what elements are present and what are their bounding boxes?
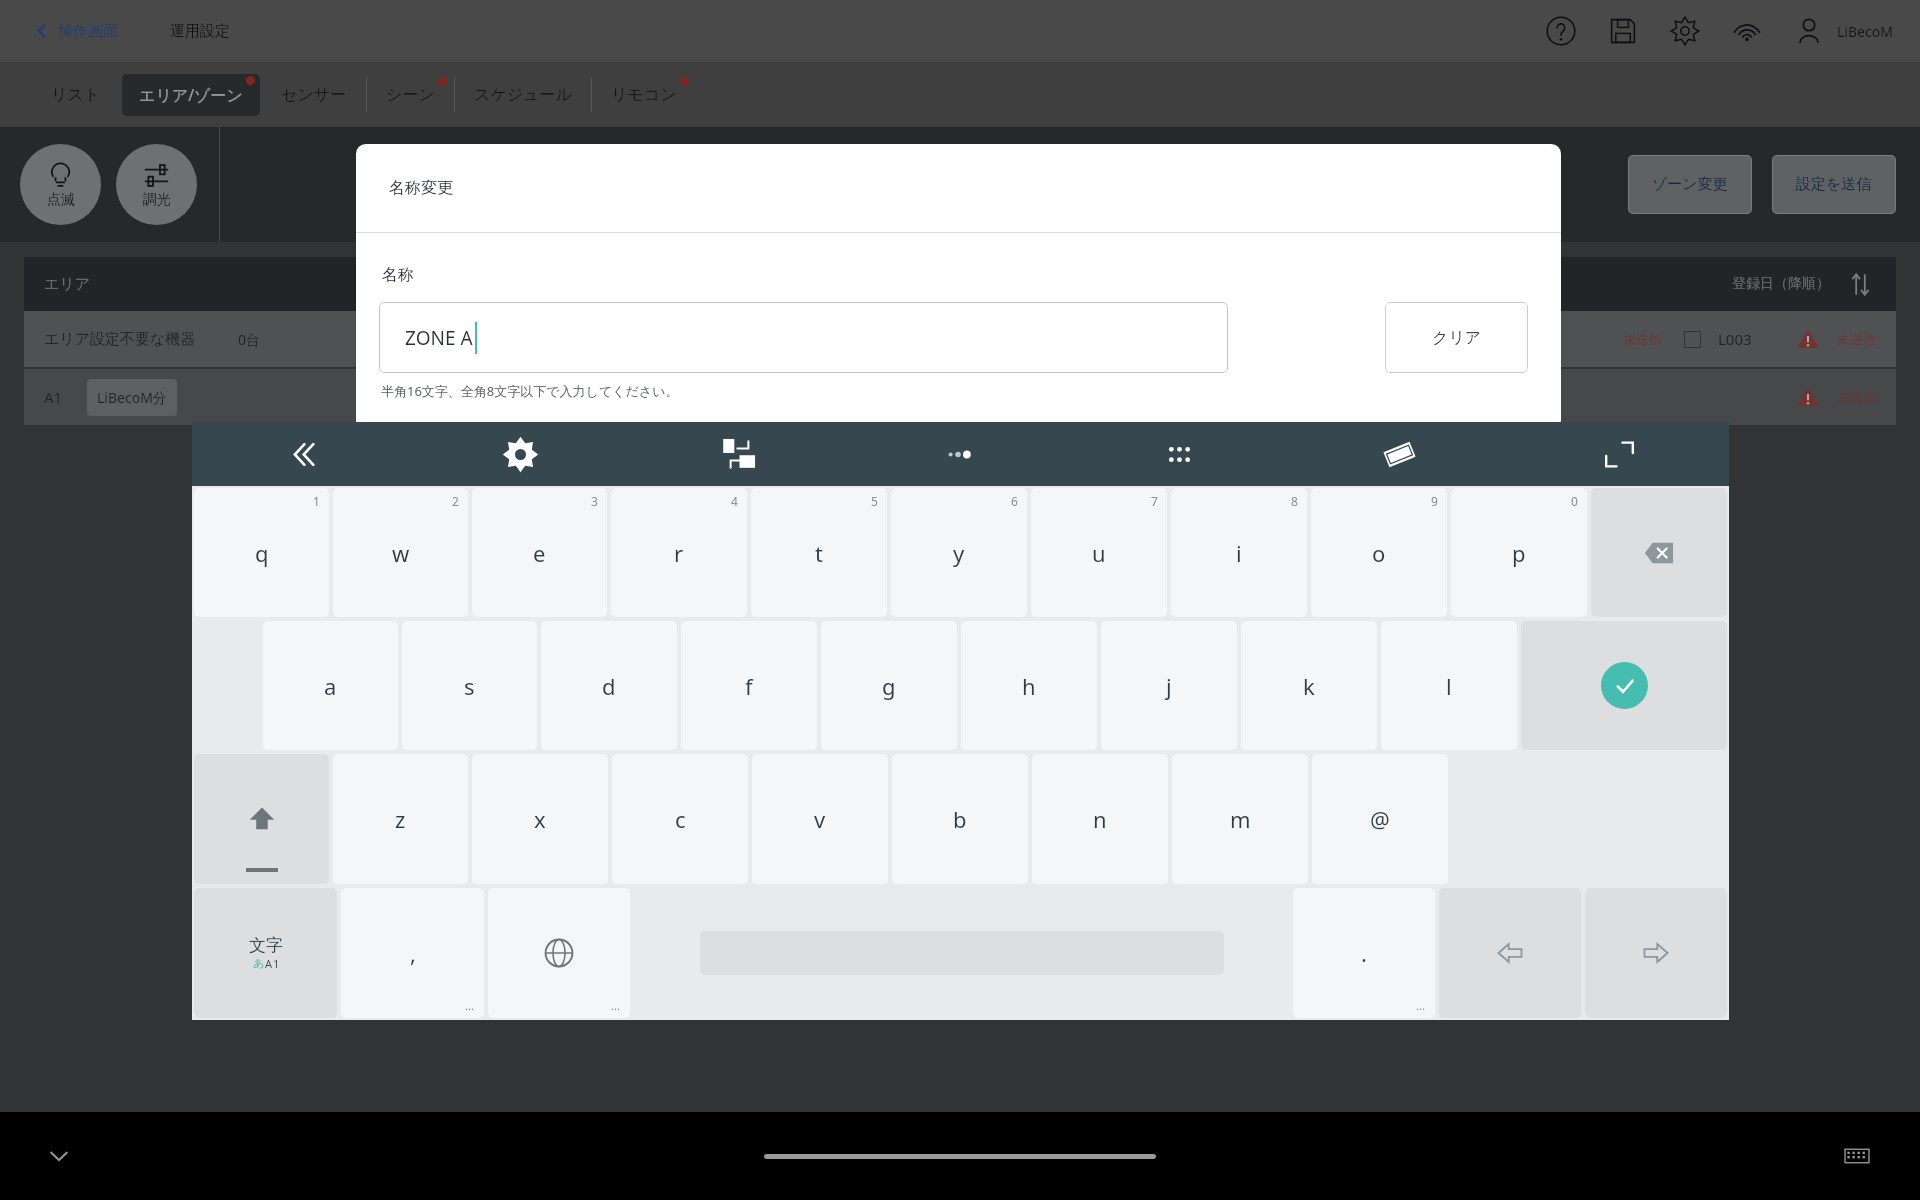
button[interactable]: Layout — [1289, 422, 1509, 486]
button[interactable]: Apps — [1069, 422, 1289, 486]
button[interactable]: , — [341, 888, 484, 1018]
button[interactable]: Settings — [1664, 10, 1706, 52]
button[interactable]: Right — [1585, 888, 1727, 1018]
button[interactable]: c — [612, 754, 748, 884]
button[interactable]: クリア — [1385, 302, 1528, 373]
staticText: c — [675, 804, 686, 834]
button[interactable]: Help — [1540, 10, 1582, 52]
button[interactable]: Save — [1602, 10, 1644, 52]
staticText: e — [533, 538, 546, 568]
staticText: 7 — [1151, 493, 1158, 509]
button[interactable]: ゾーン変更 — [1628, 155, 1752, 214]
button[interactable]: . — [1293, 888, 1435, 1018]
staticText: シーン — [386, 85, 435, 105]
staticText: t — [815, 538, 823, 568]
staticText: u — [1092, 538, 1106, 568]
button[interactable]: スケジュール — [457, 75, 589, 115]
button[interactable]: j — [1101, 621, 1237, 750]
staticText: ゾーン変更 — [1652, 175, 1728, 194]
button[interactable]: 2 — [333, 488, 468, 617]
button[interactable]: 4 — [611, 488, 747, 617]
staticText: w — [392, 538, 410, 568]
button[interactable]: Space — [634, 888, 1289, 1018]
staticText: p — [1512, 538, 1526, 568]
button[interactable]: a — [263, 621, 398, 750]
button[interactable]: Page — [849, 422, 1069, 486]
staticText: 5 — [871, 493, 878, 509]
staticText: h — [1022, 671, 1036, 701]
button[interactable]: ZONE A — [379, 302, 1228, 373]
button[interactable]: h — [961, 621, 1097, 750]
button[interactable]: 0 — [1451, 488, 1587, 617]
button[interactable]: 6 — [891, 488, 1027, 617]
button[interactable]: Shift — [194, 754, 329, 884]
button[interactable]: 8 — [1171, 488, 1307, 617]
button[interactable]: 7 — [1031, 488, 1167, 617]
button[interactable]: Switch input — [630, 422, 849, 486]
staticText: m — [1230, 804, 1251, 834]
button[interactable]: l — [1381, 621, 1517, 750]
staticText: f — [745, 671, 753, 701]
staticText: リモコン — [611, 85, 677, 105]
button[interactable]: センサー — [264, 75, 364, 115]
button[interactable]: Enter — [1521, 621, 1727, 750]
button[interactable]: 調光 — [116, 144, 197, 225]
button[interactable]: Collapse — [192, 422, 411, 486]
button[interactable]: 操作画面 — [27, 14, 123, 48]
button[interactable]: Backspace — [1591, 488, 1727, 617]
button[interactable]: m — [1172, 754, 1308, 884]
staticText: エリア — [44, 275, 91, 294]
button[interactable]: エリア/ゾーン — [122, 74, 260, 116]
staticText: 名称変更 — [389, 178, 453, 198]
button[interactable]: z — [333, 754, 468, 884]
staticText: 調光 — [143, 191, 171, 209]
staticText: 設定を送信 — [1796, 175, 1872, 194]
button[interactable]: Keyboard layout — [1841, 1140, 1873, 1172]
button[interactable]: k — [1241, 621, 1377, 750]
button[interactable]: v — [752, 754, 888, 884]
button[interactable]: Resize — [1509, 422, 1729, 486]
button[interactable]: エリア設定不要な機器 — [24, 311, 1896, 367]
button[interactable]: 3 — [472, 488, 607, 617]
staticText: y — [953, 538, 965, 568]
staticText: o — [1372, 538, 1386, 568]
staticText: l — [1446, 671, 1452, 701]
button[interactable]: 9 — [1311, 488, 1447, 617]
button[interactable]: リスト — [34, 75, 118, 115]
staticText: 4 — [731, 493, 738, 509]
button[interactable]: 設定を送信 — [1772, 155, 1896, 214]
button[interactable]: Language — [488, 888, 630, 1018]
button[interactable]: リモコン — [594, 75, 694, 115]
button[interactable]: 5 — [751, 488, 887, 617]
staticText: d — [602, 671, 616, 701]
button[interactable]: Left — [1439, 888, 1581, 1018]
button[interactable]: A1 — [24, 369, 1896, 425]
button[interactable]: g — [821, 621, 957, 750]
staticText: v — [814, 804, 826, 834]
button[interactable]: d — [541, 621, 677, 750]
button[interactable]: シーン — [369, 75, 452, 115]
button[interactable]: f — [681, 621, 817, 750]
button[interactable]: Wi-Fi — [1726, 10, 1768, 52]
staticText: クリア — [1432, 328, 1482, 348]
staticText: センサー — [281, 85, 347, 105]
staticText: . — [1361, 938, 1367, 968]
button[interactable]: Account — [1788, 10, 1830, 52]
staticText: 8 — [1291, 493, 1298, 509]
staticText: 文字 — [249, 935, 283, 956]
button[interactable]: b — [892, 754, 1028, 884]
button[interactable]: @ — [1312, 754, 1448, 884]
staticText: j — [1166, 671, 1172, 701]
staticText: 0台 — [238, 330, 261, 349]
button[interactable]: x — [472, 754, 608, 884]
staticText: 9 — [1431, 493, 1438, 509]
button[interactable]: n — [1032, 754, 1168, 884]
button[interactable]: Settings — [411, 422, 630, 486]
staticText: @ — [1370, 804, 1390, 834]
button[interactable]: 点滅 — [20, 144, 101, 225]
button[interactable]: 文字 — [194, 888, 337, 1018]
staticText: ZONE A — [405, 325, 473, 351]
button[interactable]: s — [402, 621, 537, 750]
button[interactable]: Hide keyboard — [42, 1139, 76, 1173]
button[interactable]: 1 — [194, 488, 329, 617]
